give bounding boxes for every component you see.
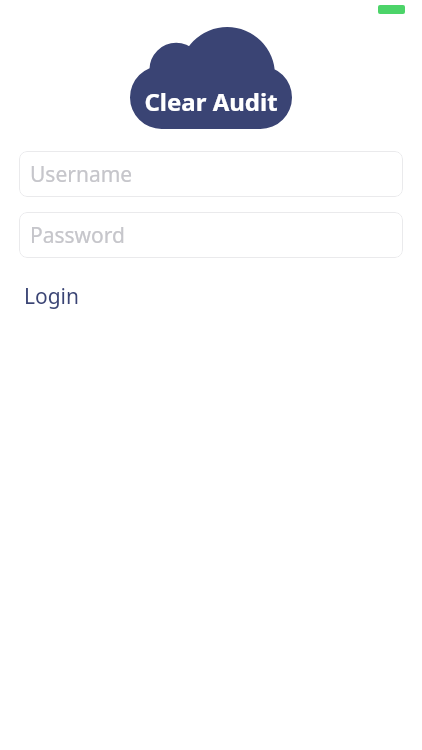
other: Status indicator [378,5,405,14]
button[interactable]: Username [19,151,403,197]
staticText: Password [30,221,125,250]
staticText: Username [30,160,133,189]
button[interactable]: Password [19,212,403,258]
button[interactable]: Login [19,280,85,313]
other: Clear Audit logo [130,27,292,129]
staticText: Clear Audit [144,85,278,118]
staticText: Login [24,282,80,311]
